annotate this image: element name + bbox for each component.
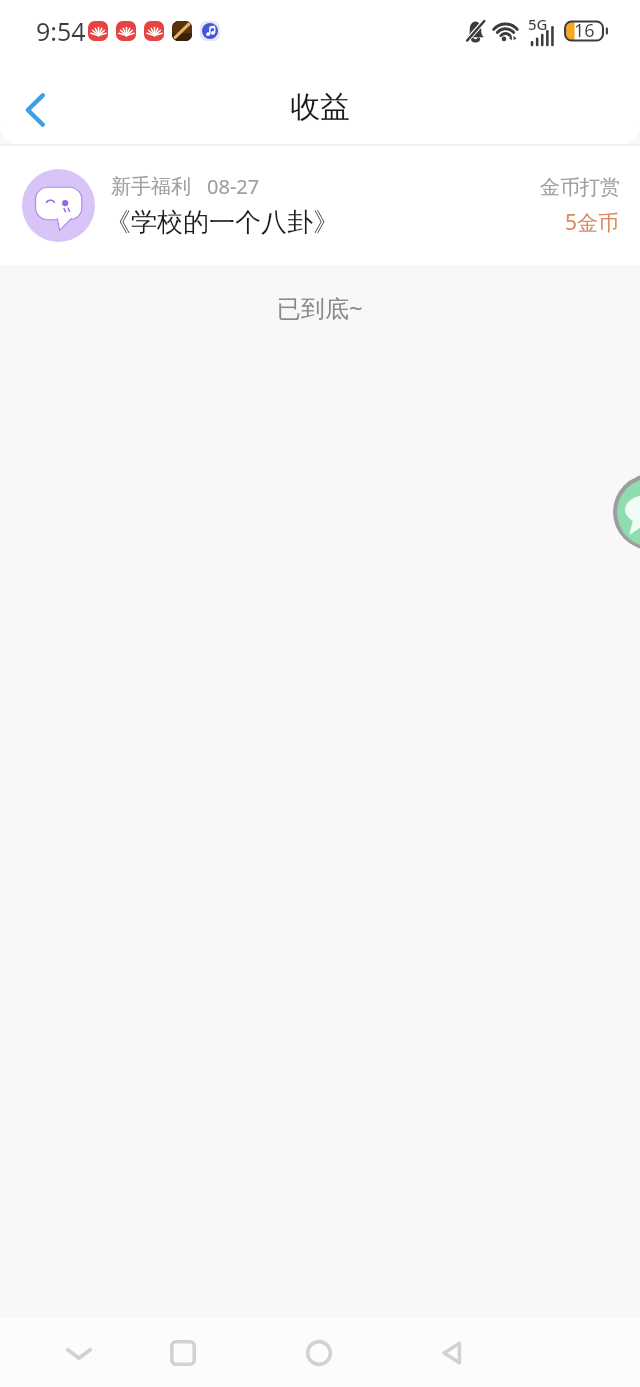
staticText: 16	[574, 18, 595, 43]
button[interactable]: Back	[419, 1318, 487, 1387]
staticText: 《学校的一个八卦》	[105, 206, 339, 239]
staticText: 9:54	[36, 14, 86, 48]
staticText: 5金币	[565, 208, 620, 237]
staticText: 已到底~	[277, 291, 363, 324]
staticText: 新手福利	[111, 174, 191, 199]
button[interactable]: Hide keyboard	[45, 1318, 113, 1387]
button[interactable]: Recents	[149, 1318, 217, 1387]
staticText: 08-27	[207, 173, 260, 200]
button[interactable]: 新手福利	[0, 146, 640, 265]
staticText: 5G	[528, 14, 548, 34]
button[interactable]: Chat assistant	[613, 474, 640, 550]
button[interactable]: Home	[285, 1318, 353, 1387]
staticText: 收益	[290, 88, 350, 126]
staticText: 金币打赏	[540, 175, 620, 200]
button[interactable]: Back	[0, 74, 68, 142]
